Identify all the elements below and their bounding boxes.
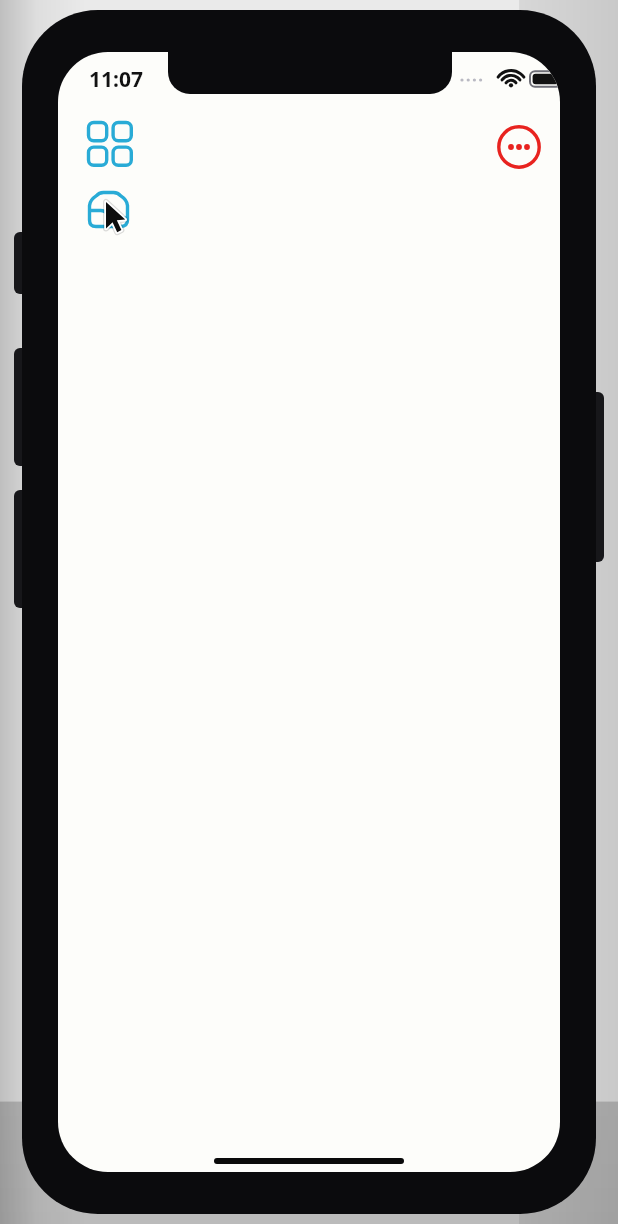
button[interactable]: Inbox xyxy=(84,184,140,240)
button[interactable]: Apps grid xyxy=(84,120,136,172)
button[interactable]: More options xyxy=(496,124,542,170)
staticText: 11:07 xyxy=(89,65,143,94)
